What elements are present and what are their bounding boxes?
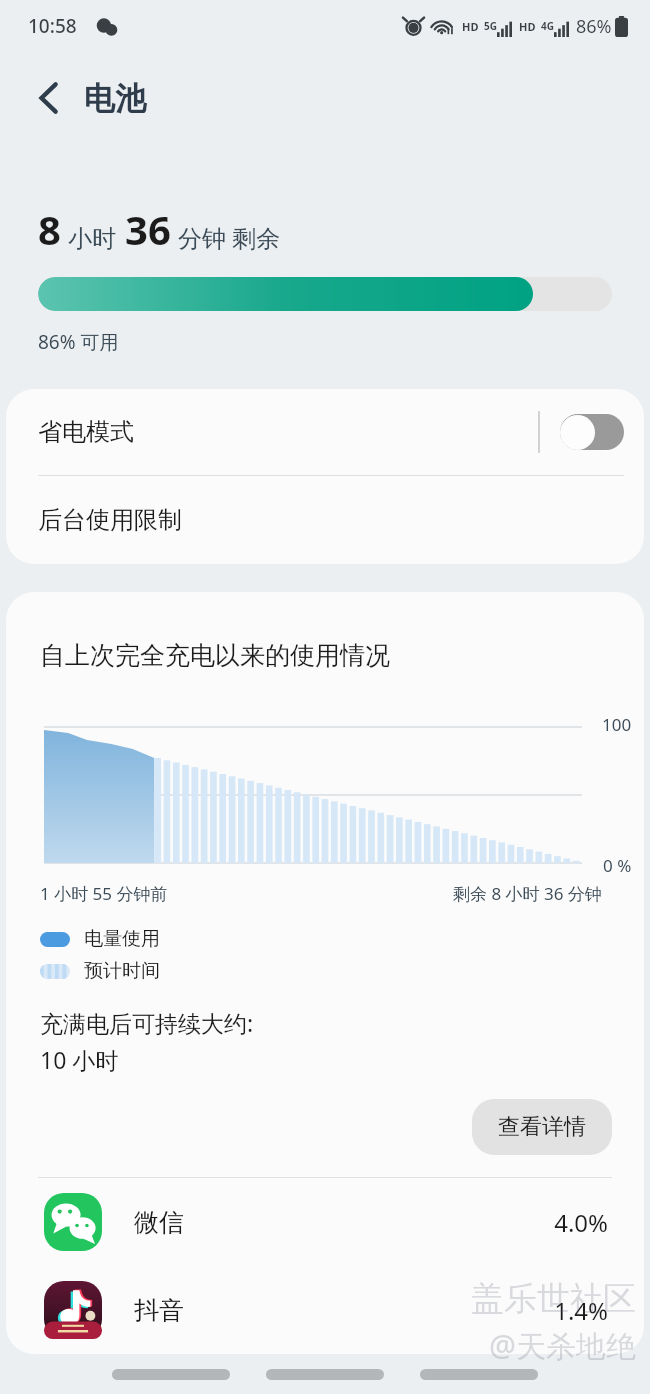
staticText: 盖乐世社区 (471, 1278, 636, 1320)
staticText: 预计时间 (84, 959, 160, 983)
staticText: 查看详情 (498, 1113, 586, 1141)
staticText: 微信 (134, 1207, 554, 1238)
staticText: 4G (541, 19, 554, 33)
button[interactable]: 抖音 (6, 1266, 644, 1354)
staticText: 充满电后可持续大约: (40, 1007, 254, 1038)
staticText: HD (519, 19, 536, 34)
staticText: HD (462, 19, 479, 34)
button[interactable]: Back (20, 69, 78, 127)
staticText: @天杀地绝 (489, 1325, 636, 1366)
button[interactable]: 微信 (6, 1178, 644, 1266)
staticText: 4.0% (554, 1206, 608, 1239)
staticText: 10:58 (28, 13, 77, 39)
staticText: 36 (125, 202, 171, 256)
staticText: 86% (576, 14, 612, 39)
staticText: 100 (602, 713, 632, 736)
staticText: 0 % (603, 854, 632, 877)
button[interactable]: Back (420, 1369, 538, 1380)
staticText: 电池 (84, 79, 146, 118)
staticText: 自上次完全充电以来的使用情况 (40, 640, 390, 671)
button[interactable]: 查看详情 (472, 1099, 612, 1155)
button[interactable]: 省电模式 (6, 389, 644, 475)
staticText: 5G (484, 19, 497, 33)
button[interactable]: Recents (112, 1369, 230, 1380)
staticText: 10 小时 (40, 1044, 119, 1075)
button[interactable]: Home (266, 1369, 384, 1380)
staticText: 抖音 (134, 1295, 554, 1326)
button[interactable]: Power saving mode toggle (560, 414, 624, 450)
staticText: 1 小时 55 分钟前 (40, 882, 168, 905)
staticText: 86% 可用 (38, 329, 119, 355)
staticText: 后台使用限制 (38, 505, 182, 535)
staticText: 分钟 剩余 (178, 221, 281, 254)
staticText: 省电模式 (38, 417, 538, 447)
staticText: 小时 (68, 224, 116, 254)
staticText: 8 (38, 202, 61, 256)
staticText: 剩余 8 小时 36 分钟 (453, 882, 602, 905)
staticText: 电量使用 (84, 927, 160, 951)
staticText: 1.4% (554, 1294, 608, 1327)
button[interactable]: 后台使用限制 (6, 476, 644, 564)
